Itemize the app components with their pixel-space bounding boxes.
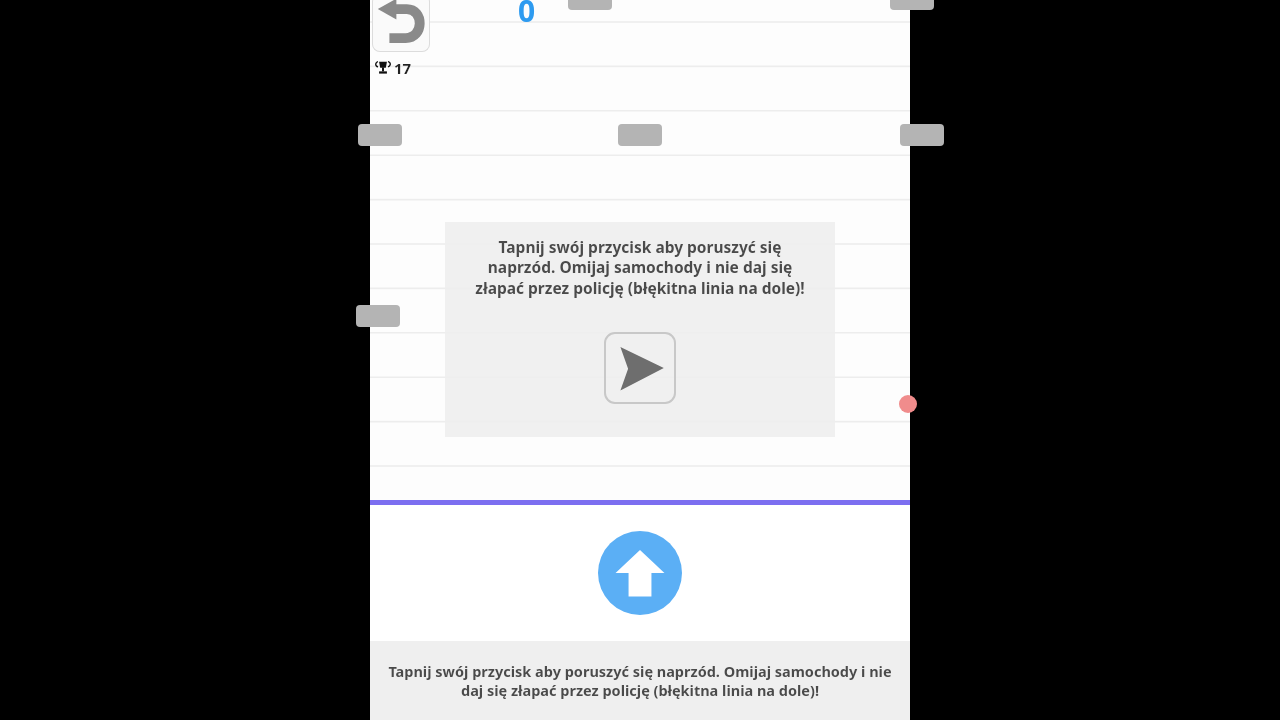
- button[interactable]: Play: [605, 333, 675, 403]
- button[interactable]: Move forward: [598, 531, 682, 615]
- staticText: 0: [518, 0, 536, 31]
- staticText: Tapnij swój przycisk aby poruszyć się na…: [380, 661, 900, 700]
- staticText: 17: [394, 58, 412, 78]
- button[interactable]: Back: [372, 0, 430, 52]
- staticText: Tapnij swój przycisk aby poruszyć się na…: [445, 236, 835, 299]
